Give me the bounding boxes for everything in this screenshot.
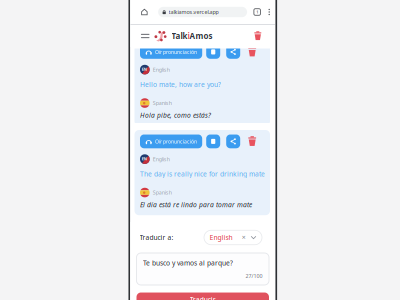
- staticText: The day is really nice for drinking mate: [140, 169, 265, 178]
- staticText: English: [153, 66, 170, 73]
- button[interactable]: Share: [226, 134, 240, 148]
- staticText: Spanish: [153, 189, 172, 196]
- button[interactable]: Home: [138, 2, 151, 22]
- button[interactable]: Te busco y vamos al parque?: [136, 253, 269, 285]
- button[interactable]: Tabs: [254, 2, 260, 22]
- button[interactable]: talkiamos.vercel.app: [158, 7, 247, 17]
- staticText: ✕: [242, 234, 246, 241]
- staticText: Hola pibe, como estás?: [140, 111, 211, 120]
- button[interactable]: Delete: [248, 134, 256, 148]
- button[interactable]: English: [204, 230, 262, 245]
- staticText: Hello mate, how are you?: [140, 80, 221, 89]
- staticText: Te busco y vamos al parque?: [143, 258, 233, 267]
- staticText: 27/100: [245, 272, 262, 279]
- staticText: 1: [256, 9, 258, 15]
- button[interactable]: Oír pronunciación: [140, 134, 202, 148]
- staticText: talkiamos.vercel.app: [169, 8, 219, 16]
- button[interactable]: Oír pronunciación: [140, 45, 202, 59]
- staticText: Oír pronunciación: [155, 48, 197, 55]
- staticText: Spanish: [153, 99, 172, 107]
- staticText: EN: [142, 156, 147, 161]
- staticText: EN: [142, 67, 147, 72]
- staticText: Traducir: [190, 295, 216, 300]
- button[interactable]: Share: [226, 45, 240, 59]
- staticText: Talk: [171, 31, 187, 41]
- staticText: English: [153, 156, 170, 163]
- button[interactable]: Clear history: [254, 25, 261, 47]
- staticText: English: [210, 233, 233, 242]
- staticText: Oír pronunciación: [155, 138, 197, 145]
- button[interactable]: Copy: [206, 45, 220, 59]
- button[interactable]: More options: [268, 2, 271, 22]
- button[interactable]: Menu: [141, 25, 150, 47]
- staticText: Traducir a:: [139, 233, 173, 242]
- button[interactable]: Traducir: [136, 292, 269, 300]
- button[interactable]: Copy: [206, 134, 220, 148]
- staticText: i: [187, 31, 189, 41]
- staticText: Amos: [189, 31, 212, 41]
- button[interactable]: Delete: [248, 45, 256, 59]
- staticText: El día está re lindo para tomar mate: [140, 200, 252, 209]
